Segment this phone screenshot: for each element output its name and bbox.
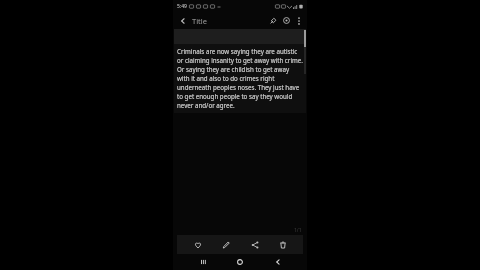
button[interactable]: Criminals are now saying they are autist… — [174, 44, 306, 113]
button[interactable] — [174, 29, 306, 44]
button[interactable]: Home — [232, 254, 248, 270]
button[interactable]: Edit — [217, 236, 234, 253]
button[interactable]: Share — [246, 236, 263, 253]
button[interactable]: Back — [176, 14, 189, 27]
staticText: Title — [192, 16, 267, 26]
button[interactable]: Favorite — [189, 236, 206, 253]
button[interactable]: Delete — [274, 236, 291, 253]
button[interactable]: Reminder — [280, 14, 293, 27]
button[interactable]: More options — [293, 15, 304, 26]
staticText: Criminals are now saying they are autist… — [177, 47, 303, 110]
staticText: 5:49 — [177, 3, 187, 10]
button[interactable]: Recent apps — [195, 254, 211, 270]
staticText: 1/1 — [294, 227, 302, 234]
button[interactable]: Pin — [267, 14, 280, 27]
button[interactable]: Back — [270, 254, 286, 270]
